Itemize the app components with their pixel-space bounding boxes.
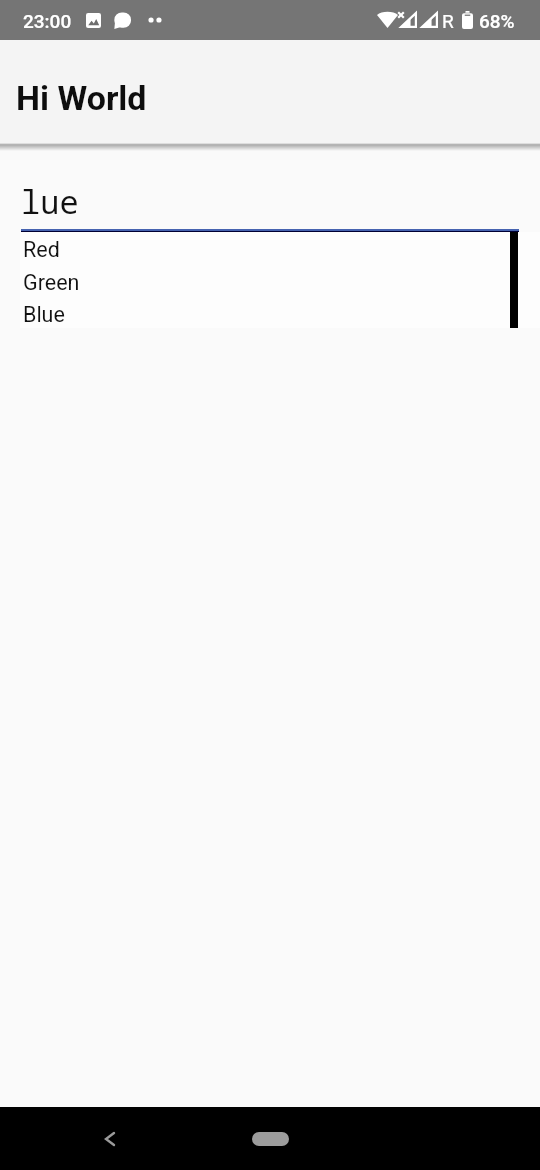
button[interactable]: Back xyxy=(86,1115,134,1163)
staticText: Blue xyxy=(23,302,65,327)
staticText: R xyxy=(442,10,454,32)
staticText: 68% xyxy=(479,10,515,32)
button[interactable]: Green xyxy=(0,266,540,298)
staticText: Red xyxy=(23,237,60,262)
staticText: lue xyxy=(21,180,79,224)
staticText: Green xyxy=(23,270,80,295)
button[interactable]: Home xyxy=(238,1119,302,1159)
button[interactable]: lue xyxy=(21,163,519,232)
staticText: 23:00 xyxy=(23,10,72,32)
staticText: Hi World xyxy=(16,78,147,118)
button[interactable]: Red xyxy=(0,233,540,265)
button[interactable]: Blue xyxy=(0,298,540,330)
